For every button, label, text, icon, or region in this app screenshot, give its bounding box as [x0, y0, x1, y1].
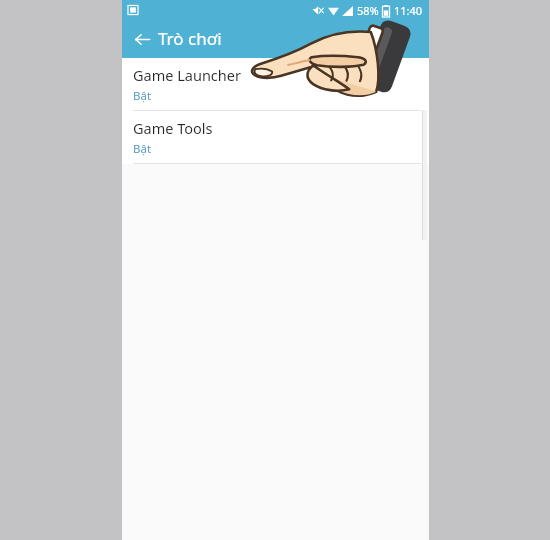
button[interactable]: Back [126, 23, 158, 55]
button[interactable]: Game Tools [122, 111, 429, 163]
staticText: Game Tools [133, 118, 213, 138]
staticText: Bật [133, 141, 152, 157]
staticText: Bật [133, 88, 152, 104]
staticText: Trò chơi [158, 27, 222, 50]
button[interactable]: Game Launcher [122, 58, 429, 110]
staticText: Game Launcher [133, 65, 241, 85]
staticText: 11:40 [394, 3, 423, 18]
staticText: 58% [357, 3, 379, 18]
